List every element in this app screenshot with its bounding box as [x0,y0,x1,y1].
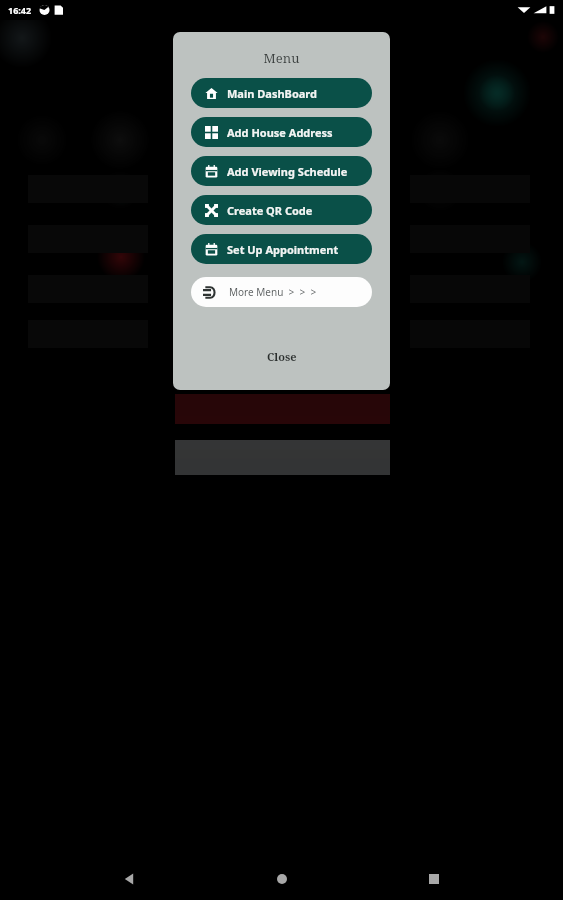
staticText: Menu [173,49,390,67]
button[interactable]: Add House Address [191,117,372,147]
button[interactable]: Set Up Appointment [191,234,372,264]
staticText: More Menu > > > [229,285,317,299]
staticText: Add Viewing Schedule [227,164,348,179]
button[interactable]: Back [105,858,153,900]
button[interactable]: Recent apps [410,858,458,900]
button[interactable]: Main DashBoard [191,78,372,108]
staticText: Close [267,349,297,364]
button[interactable]: Create QR Code [191,195,372,225]
button[interactable]: Home [258,858,306,900]
staticText: 16:42 [8,4,32,16]
staticText: Set Up Appointment [227,242,339,257]
staticText: Add House Address [227,125,333,140]
button[interactable]: Add Viewing Schedule [191,156,372,186]
staticText: Create QR Code [227,203,313,218]
staticText: Main DashBoard [227,86,318,101]
button[interactable]: Close [173,343,390,369]
button[interactable]: More Menu > > > [191,277,372,307]
